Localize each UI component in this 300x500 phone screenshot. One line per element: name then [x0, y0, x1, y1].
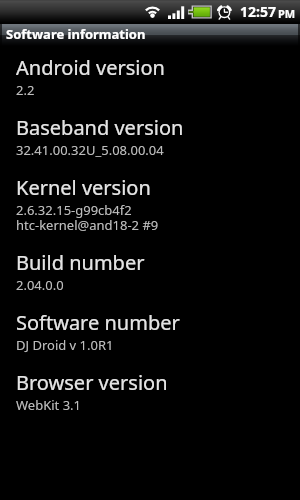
button[interactable]: Baseband version — [0, 106, 300, 166]
staticText: 2.04.0.0 — [16, 276, 64, 294]
staticText: Software information — [6, 25, 146, 43]
button[interactable]: Software number — [0, 301, 300, 361]
other: Battery — [188, 5, 212, 19]
button[interactable]: Browser version — [0, 361, 300, 421]
other: Wi-Fi signal — [145, 4, 160, 18]
staticText: 12:57 — [240, 2, 276, 21]
other: Alarm set — [215, 2, 233, 19]
staticText: Build number — [16, 249, 145, 276]
staticText: 2.6.32.15-g99cb4f2 — [16, 201, 132, 219]
other: Mobile signal strength — [168, 6, 184, 19]
staticText: Software number — [16, 309, 180, 336]
staticText: Browser version — [16, 369, 168, 396]
staticText: 2.2 — [16, 81, 35, 99]
staticText: 32.41.00.32U_5.08.00.04 — [16, 141, 164, 159]
staticText: Baseband version — [16, 114, 184, 141]
button[interactable]: Kernel version — [0, 166, 300, 241]
staticText: PM — [278, 6, 296, 21]
button[interactable]: Android version — [0, 46, 300, 106]
staticText: htc-kernel@and18-2 #9 — [16, 216, 159, 234]
staticText: WebKit 3.1 — [16, 396, 81, 414]
staticText: Android version — [16, 54, 165, 81]
staticText: Kernel version — [16, 174, 151, 201]
staticText: DJ Droid v 1.0R1 — [16, 336, 114, 354]
button[interactable]: Build number — [0, 241, 300, 301]
